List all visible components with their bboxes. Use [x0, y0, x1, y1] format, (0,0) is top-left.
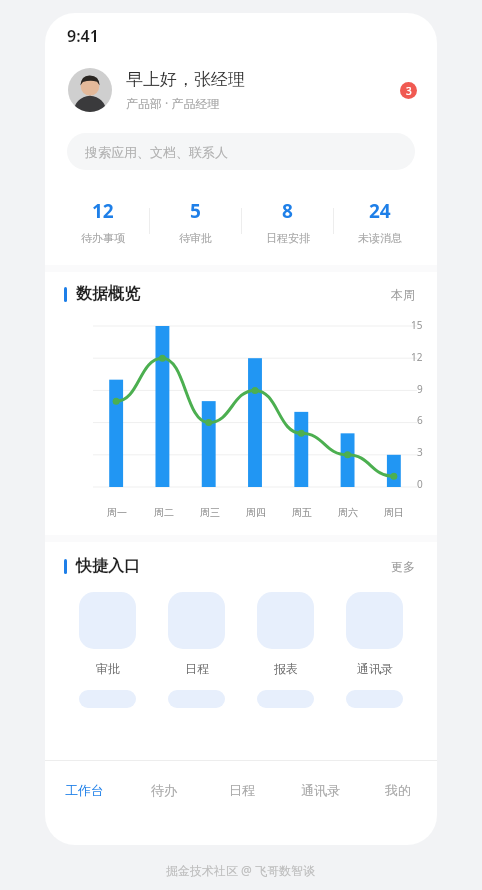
staticText: 8 — [282, 198, 293, 224]
staticText: 15 — [411, 318, 423, 332]
staticText: 掘金技术社区 @ 飞哥数智谈 — [166, 862, 316, 878]
button[interactable]: 报表 — [241, 592, 330, 676]
staticText: 产品部 · 产品经理 — [126, 95, 220, 111]
staticText: 我的 — [385, 782, 411, 798]
staticText: 周五 — [292, 506, 312, 519]
staticText: 数据概览 — [76, 284, 140, 304]
staticText: 通讯录 — [301, 782, 340, 798]
button[interactable]: 更多 — [391, 559, 415, 574]
staticText: 待审批 — [179, 231, 212, 245]
button[interactable]: 5 — [150, 198, 241, 245]
staticText: 工作台 — [65, 782, 104, 798]
staticText: 待办 — [151, 782, 177, 798]
staticText: 快捷入口 — [76, 556, 140, 576]
staticText: 报表 — [274, 661, 298, 676]
button[interactable]: 通讯录 — [281, 761, 359, 819]
staticText: 12 — [92, 198, 114, 224]
button[interactable]: 日程 — [203, 761, 281, 819]
button[interactable]: 审批 — [63, 592, 152, 676]
staticText: 9:41 — [67, 25, 99, 47]
button[interactable]: 我的 — [359, 761, 437, 819]
button[interactable]: Quick entry — [257, 690, 314, 708]
button[interactable]: 本周 — [391, 287, 415, 302]
staticText: 3 — [406, 84, 412, 98]
staticText: 3 — [417, 445, 423, 459]
staticText: 0 — [417, 477, 423, 491]
staticText: 9 — [417, 382, 423, 396]
staticText: 12 — [411, 350, 423, 364]
staticText: 审批 — [96, 661, 120, 676]
button[interactable]: 8 — [242, 198, 333, 245]
staticText: 周四 — [246, 506, 266, 519]
staticText: 待办事项 — [81, 231, 125, 245]
staticText: 周日 — [384, 506, 404, 519]
staticText: 6 — [417, 413, 423, 427]
staticText: 周六 — [338, 506, 358, 519]
button[interactable]: 24 — [334, 198, 425, 245]
staticText: 本周 — [391, 287, 415, 302]
button[interactable]: Quick entry — [168, 690, 225, 708]
staticText: 未读消息 — [358, 231, 402, 245]
button[interactable]: Profile avatar — [68, 68, 112, 112]
button[interactable]: Quick entry — [346, 690, 403, 708]
button[interactable]: 日程 — [152, 592, 241, 676]
staticText: 搜索应用、文档、联系人 — [85, 144, 228, 160]
staticText: 周二 — [154, 506, 174, 519]
button[interactable]: Notifications, 3 unread — [400, 82, 417, 99]
button[interactable]: Quick entry — [79, 690, 136, 708]
staticText: 5 — [190, 198, 201, 224]
staticText: 早上好，张经理 — [126, 69, 245, 90]
staticText: 周一 — [107, 506, 127, 519]
button[interactable]: 12 — [57, 198, 149, 245]
staticText: 更多 — [391, 559, 415, 574]
staticText: 日程安排 — [266, 231, 310, 245]
staticText: 通讯录 — [357, 661, 393, 676]
staticText: 日程 — [229, 782, 255, 798]
button[interactable]: 工作台 — [45, 761, 124, 819]
button[interactable]: 待办 — [124, 761, 203, 819]
button[interactable]: 搜索应用、文档、联系人 — [67, 133, 415, 170]
staticText: 周三 — [200, 506, 220, 519]
button[interactable]: 通讯录 — [330, 592, 419, 676]
staticText: 日程 — [185, 661, 209, 676]
staticText: 24 — [369, 198, 391, 224]
